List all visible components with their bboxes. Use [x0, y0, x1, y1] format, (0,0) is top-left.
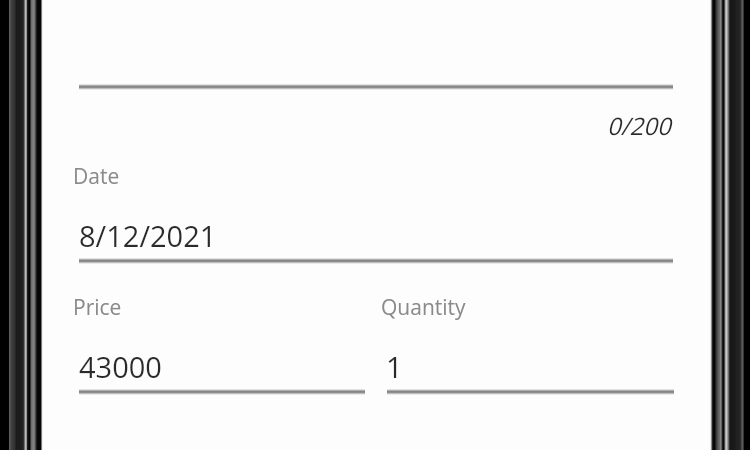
staticText: 8/12/2021 [79, 216, 217, 255]
staticText: Price [73, 293, 122, 322]
button[interactable]: 0/200 [79, 0, 673, 156]
button[interactable]: Date [73, 156, 673, 262]
staticText: 1 [386, 347, 403, 386]
staticText: Quantity [381, 293, 466, 322]
staticText: 43000 [79, 347, 162, 386]
staticText: 0/200 [607, 109, 671, 142]
staticText: Date [73, 162, 120, 191]
button[interactable]: Price [73, 287, 365, 393]
button[interactable]: Quantity [381, 287, 674, 393]
